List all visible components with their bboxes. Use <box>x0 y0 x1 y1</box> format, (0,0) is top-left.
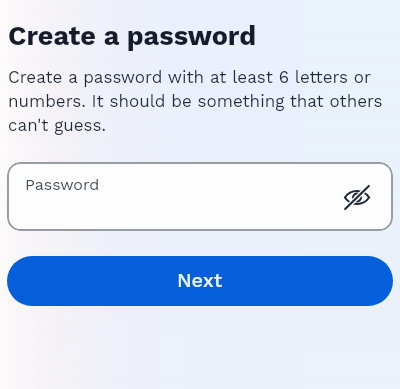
button[interactable]: Password <box>7 162 393 231</box>
staticText: Create a password with at least 6 letter… <box>8 64 390 136</box>
button[interactable]: Show password <box>344 184 370 210</box>
button[interactable]: Next <box>7 256 393 306</box>
staticText: Create a password <box>8 20 257 52</box>
staticText: Next <box>177 268 223 291</box>
staticText: Password <box>25 175 100 194</box>
